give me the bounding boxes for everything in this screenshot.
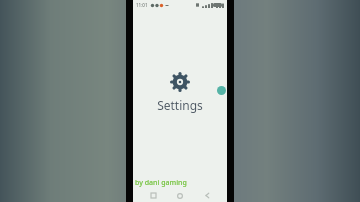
button[interactable]: Settings app icon xyxy=(170,72,190,92)
button[interactable]: Home xyxy=(173,189,187,202)
staticText: Settings xyxy=(157,97,203,113)
button[interactable]: Recent apps xyxy=(146,189,160,202)
staticText: by dani gaming xyxy=(135,178,187,188)
button[interactable]: Touch indicator xyxy=(217,86,226,95)
button[interactable]: Back xyxy=(200,189,214,202)
staticText: 11:01 xyxy=(136,2,148,8)
